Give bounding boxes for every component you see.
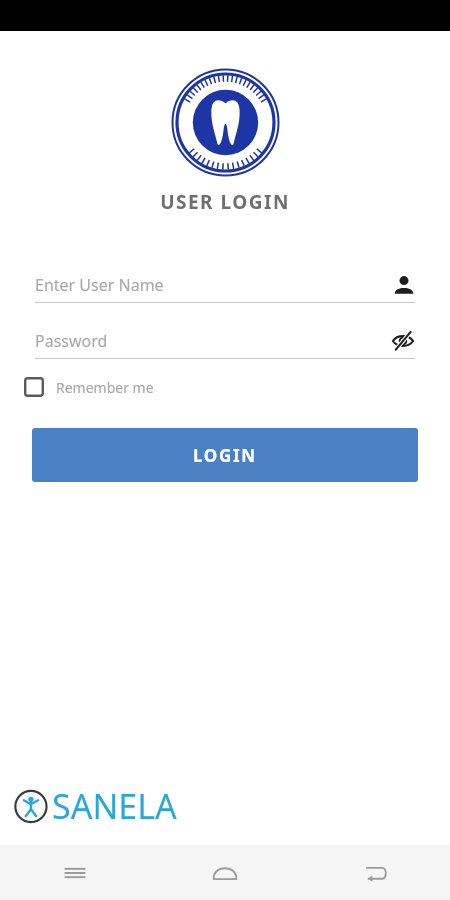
button[interactable]: Enter User Name xyxy=(35,268,415,302)
button[interactable]: Back xyxy=(300,845,450,900)
staticText: USER LOGIN xyxy=(0,189,450,215)
button[interactable]: LOGIN xyxy=(32,428,418,482)
button[interactable]: Show password xyxy=(391,329,415,353)
button[interactable]: Home xyxy=(150,845,300,900)
staticText: Password xyxy=(35,330,391,352)
staticText: SANELA xyxy=(52,783,177,829)
button[interactable]: Recent apps xyxy=(0,845,150,900)
staticText: LOGIN xyxy=(193,444,257,467)
button[interactable]: Password xyxy=(35,324,415,358)
staticText: Enter User Name xyxy=(35,274,393,296)
staticText: Remember me xyxy=(56,378,154,397)
button[interactable]: Remember me xyxy=(24,373,164,401)
button[interactable]: User name xyxy=(393,274,415,296)
